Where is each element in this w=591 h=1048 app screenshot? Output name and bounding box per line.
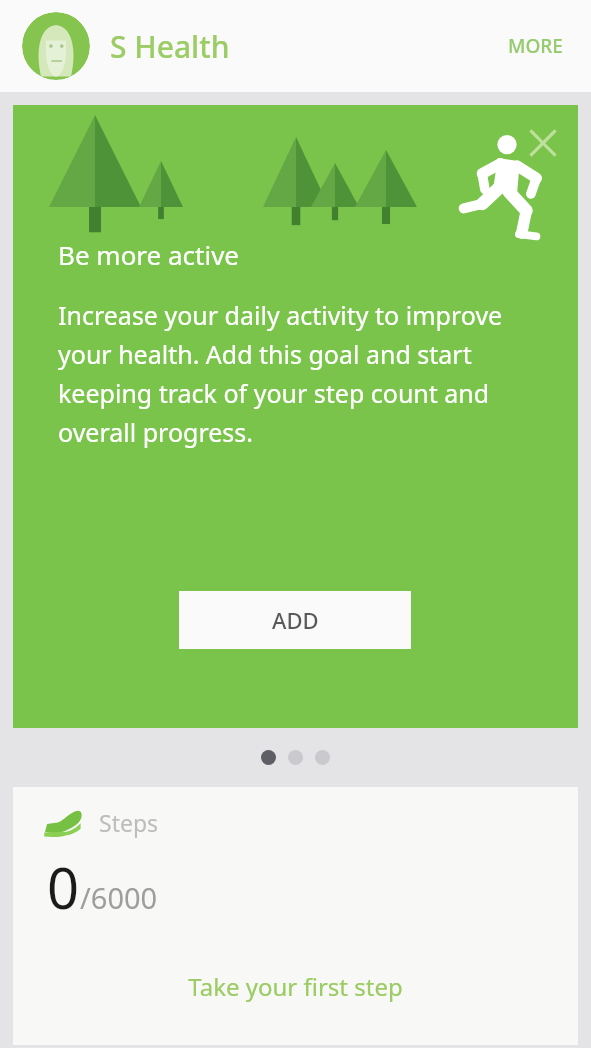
button[interactable]: Steps: [13, 787, 578, 1045]
button[interactable]: Close: [513, 113, 573, 173]
staticText: 0: [47, 849, 80, 925]
staticText: Take your first step: [188, 970, 403, 1003]
staticText: S Health: [110, 26, 230, 67]
button[interactable]: Page 1: [261, 750, 276, 765]
button[interactable]: ADD: [179, 591, 411, 649]
button[interactable]: Page 3: [315, 750, 330, 765]
staticText: ADD: [272, 605, 319, 635]
staticText: Steps: [99, 807, 159, 838]
button[interactable]: Page 2: [288, 750, 303, 765]
staticText: Increase your daily activity to improve …: [58, 298, 536, 449]
staticText: /6000: [80, 878, 158, 917]
staticText: MORE: [508, 33, 563, 59]
button[interactable]: Profile: [22, 12, 90, 80]
other: Running: [461, 130, 553, 242]
button[interactable]: Take your first step: [13, 959, 578, 1013]
button[interactable]: MORE: [498, 23, 573, 69]
button[interactable]: Running: [13, 105, 578, 728]
staticText: Be more active: [58, 237, 240, 272]
